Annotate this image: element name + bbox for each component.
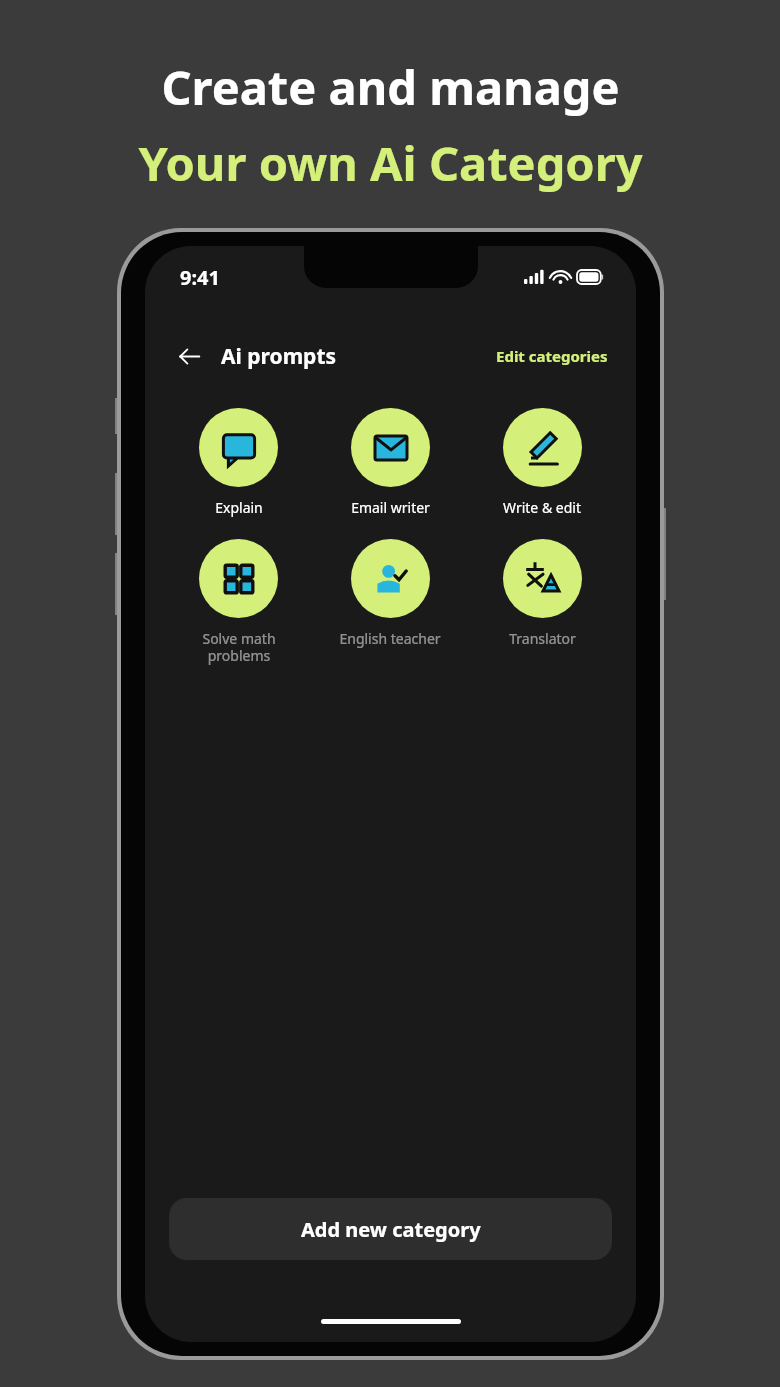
- staticText: Write & edit: [503, 498, 581, 517]
- button[interactable]: Explain: [163, 408, 314, 517]
- button[interactable]: Add new category: [169, 1198, 612, 1260]
- staticText: English teacher: [339, 629, 441, 648]
- staticText: Add new category: [301, 1216, 481, 1243]
- button[interactable]: Email writer: [314, 408, 466, 517]
- staticText: Ai prompts: [221, 342, 337, 371]
- button[interactable]: Back: [171, 338, 207, 374]
- staticText: Email writer: [351, 498, 430, 517]
- staticText: Translator: [509, 629, 576, 648]
- button[interactable]: Edit categories: [494, 340, 610, 372]
- staticText: Create and manage: [161, 55, 620, 119]
- staticText: Solve math problems: [202, 629, 276, 665]
- button[interactable]: Solve math problems: [163, 539, 314, 665]
- button[interactable]: Write & edit: [466, 408, 618, 517]
- staticText: 9:41: [180, 264, 220, 291]
- button[interactable]: English teacher: [314, 539, 466, 648]
- staticText: Explain: [215, 498, 263, 517]
- staticText: Your own Ai Category: [138, 131, 643, 195]
- staticText: Edit categories: [496, 346, 608, 366]
- button[interactable]: Translator: [466, 539, 618, 648]
